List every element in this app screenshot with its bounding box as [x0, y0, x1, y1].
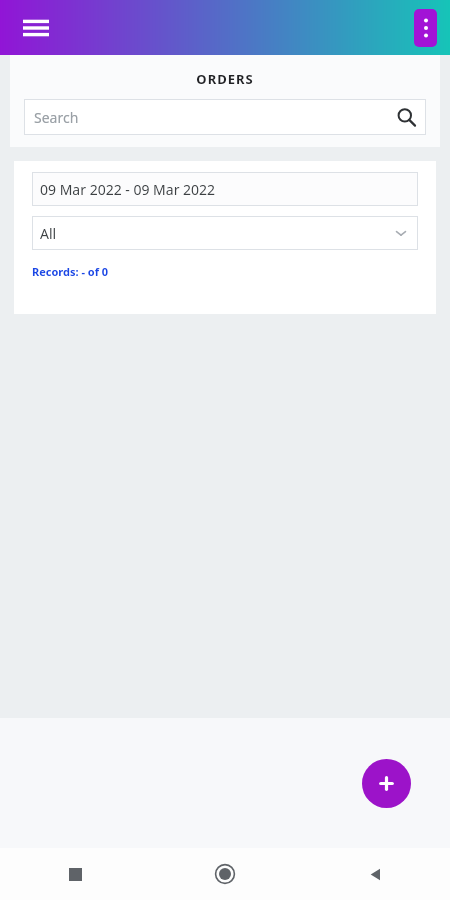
- button[interactable]: More options: [414, 9, 437, 47]
- staticText: Records: - of 0: [32, 264, 109, 279]
- button[interactable]: Add order: [362, 759, 411, 808]
- staticText: Search: [34, 108, 396, 127]
- button[interactable]: Search: [24, 99, 426, 135]
- staticText: All: [40, 224, 394, 243]
- button[interactable]: Recents: [0, 848, 150, 900]
- button[interactable]: Home: [150, 848, 300, 900]
- button[interactable]: Menu: [14, 6, 58, 50]
- button[interactable]: Back: [300, 848, 450, 900]
- button[interactable]: All: [32, 216, 418, 250]
- button[interactable]: 09 Mar 2022 - 09 Mar 2022: [32, 172, 418, 206]
- staticText: ORDERS: [10, 70, 440, 88]
- staticText: 09 Mar 2022 - 09 Mar 2022: [40, 180, 216, 199]
